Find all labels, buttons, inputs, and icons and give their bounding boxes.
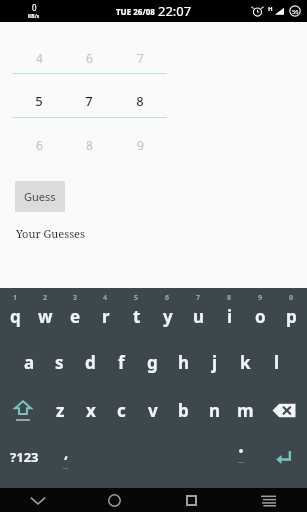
button[interactable]: h — [168, 338, 199, 386]
button[interactable]: 8 — [120, 92, 160, 110]
staticText: 7 — [85, 92, 93, 110]
button[interactable]: 0 — [276, 288, 307, 338]
staticText: v — [148, 399, 158, 422]
button[interactable]: , — [49, 434, 83, 480]
staticText: 0 — [32, 2, 37, 13]
staticText: g — [147, 351, 158, 374]
button[interactable]: Shift — [0, 386, 45, 434]
staticText: 6 — [165, 293, 170, 303]
staticText: 4 — [36, 50, 43, 66]
staticText: p — [286, 305, 297, 328]
staticText: a — [24, 351, 35, 374]
staticText: 2 — [43, 293, 48, 303]
staticText: w — [38, 305, 53, 328]
staticText: j — [212, 351, 218, 374]
staticText: Your Guesses — [16, 226, 85, 241]
button[interactable]: 4 — [19, 49, 59, 67]
staticText: Guess — [24, 189, 56, 204]
staticText: H — [268, 5, 273, 13]
button[interactable]: 4 — [90, 288, 121, 338]
staticText: u — [193, 305, 205, 328]
button[interactable]: j — [199, 338, 230, 386]
staticText: t — [133, 305, 141, 328]
staticText: r — [102, 305, 110, 328]
staticText: i — [227, 305, 233, 328]
button[interactable]: Recents — [153, 488, 230, 512]
button[interactable]: f — [106, 338, 137, 386]
staticText: ... — [238, 456, 244, 466]
button[interactable]: b — [168, 386, 199, 434]
button[interactable]: 7 — [69, 92, 109, 110]
staticText: 8 — [86, 137, 93, 153]
staticText: y — [163, 305, 173, 328]
staticText: n — [209, 399, 221, 422]
staticText: c — [117, 399, 126, 422]
button[interactable]: m — [230, 386, 261, 434]
button[interactable]: Menu — [230, 488, 307, 512]
button[interactable]: 8 — [214, 288, 245, 338]
button[interactable]: ?123 — [0, 434, 49, 480]
staticText: 6 — [86, 50, 93, 66]
button[interactable]: k — [230, 338, 261, 386]
staticText: TUE 26/08 — [116, 6, 155, 17]
button[interactable]: 5 — [19, 92, 59, 110]
button[interactable]: ... — [224, 434, 258, 480]
button[interactable]: a — [14, 338, 44, 386]
staticText: d — [85, 351, 96, 374]
button[interactable]: z — [45, 386, 75, 434]
staticText: 5 — [134, 293, 139, 303]
button[interactable]: Back — [0, 488, 76, 512]
staticText: e — [70, 305, 81, 328]
staticText: k — [240, 351, 251, 374]
button[interactable]: Enter — [258, 434, 307, 480]
button[interactable]: 6 — [19, 136, 59, 154]
staticText: ... — [63, 462, 69, 472]
staticText: s — [55, 351, 64, 374]
button[interactable]: l — [261, 338, 292, 386]
button[interactable]: d — [75, 338, 106, 386]
button[interactable]: Guess — [15, 181, 65, 212]
staticText: 0 — [289, 293, 294, 303]
button[interactable]: v — [137, 386, 168, 434]
button[interactable]: 5 — [121, 288, 152, 338]
button[interactable]: Backspace — [261, 386, 307, 434]
button[interactable]: n — [199, 386, 230, 434]
button[interactable]: 1 — [0, 288, 30, 338]
button[interactable]: c — [106, 386, 137, 434]
staticText: 5 — [35, 92, 43, 110]
button[interactable]: 7 — [183, 288, 214, 338]
staticText: o — [255, 305, 266, 328]
button[interactable]: s — [44, 338, 75, 386]
button[interactable]: x — [75, 386, 106, 434]
button[interactable]: 2 — [30, 288, 60, 338]
button[interactable]: g — [137, 338, 168, 386]
staticText: 1 — [13, 293, 18, 303]
staticText: z — [56, 399, 65, 422]
button[interactable]: 6 — [152, 288, 183, 338]
staticText: 7 — [196, 293, 201, 303]
staticText: , — [64, 442, 69, 462]
button[interactable]: 9 — [245, 288, 276, 338]
staticText: 8 — [227, 293, 232, 303]
button[interactable]: 6 — [69, 49, 109, 67]
staticText: l — [274, 351, 280, 374]
staticText: 3 — [73, 293, 78, 303]
staticText: 9 — [137, 137, 144, 153]
staticText: h — [178, 351, 190, 374]
staticText: x — [86, 399, 96, 422]
staticText: 7 — [137, 50, 144, 66]
staticText: 56 — [292, 8, 299, 15]
button[interactable]: 7 — [120, 49, 160, 67]
staticText: 8 — [136, 92, 144, 110]
staticText: 22:07 — [158, 2, 192, 20]
button[interactable]: 8 — [69, 136, 109, 154]
button[interactable]: 3 — [60, 288, 90, 338]
staticText: ?123 — [10, 448, 39, 466]
button[interactable]: 9 — [120, 136, 160, 154]
button[interactable]: Home — [76, 488, 153, 512]
staticText: 9 — [258, 293, 263, 303]
staticText: m — [237, 399, 254, 422]
staticText: q — [10, 305, 21, 328]
staticText: 6 — [36, 137, 43, 153]
